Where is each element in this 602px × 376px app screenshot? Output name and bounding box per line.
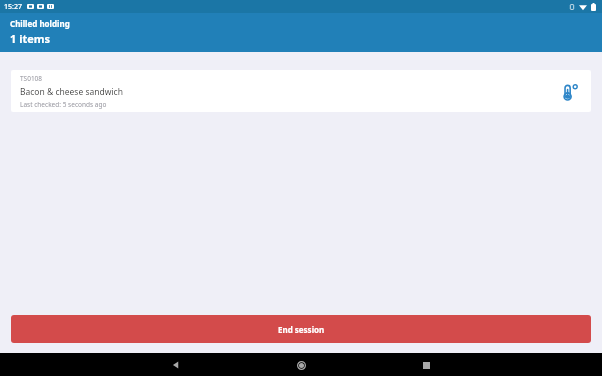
staticText: TS0108 [20, 74, 43, 83]
button[interactable]: End session [11, 315, 591, 343]
staticText: End session [278, 324, 325, 335]
staticText: Chilled holding [10, 18, 70, 29]
button[interactable]: TS0108 [11, 70, 591, 112]
staticText: 15:27 [4, 2, 22, 12]
button[interactable]: Recent apps [415, 354, 437, 376]
button[interactable]: Temperature check [556, 78, 582, 104]
staticText: Bacon & cheese sandwich [20, 86, 123, 98]
staticText: 1 items [10, 31, 51, 46]
staticText: Last checked: 5 seconds ago [20, 100, 107, 109]
button[interactable]: Home [290, 354, 312, 376]
button[interactable]: Back [165, 354, 187, 376]
